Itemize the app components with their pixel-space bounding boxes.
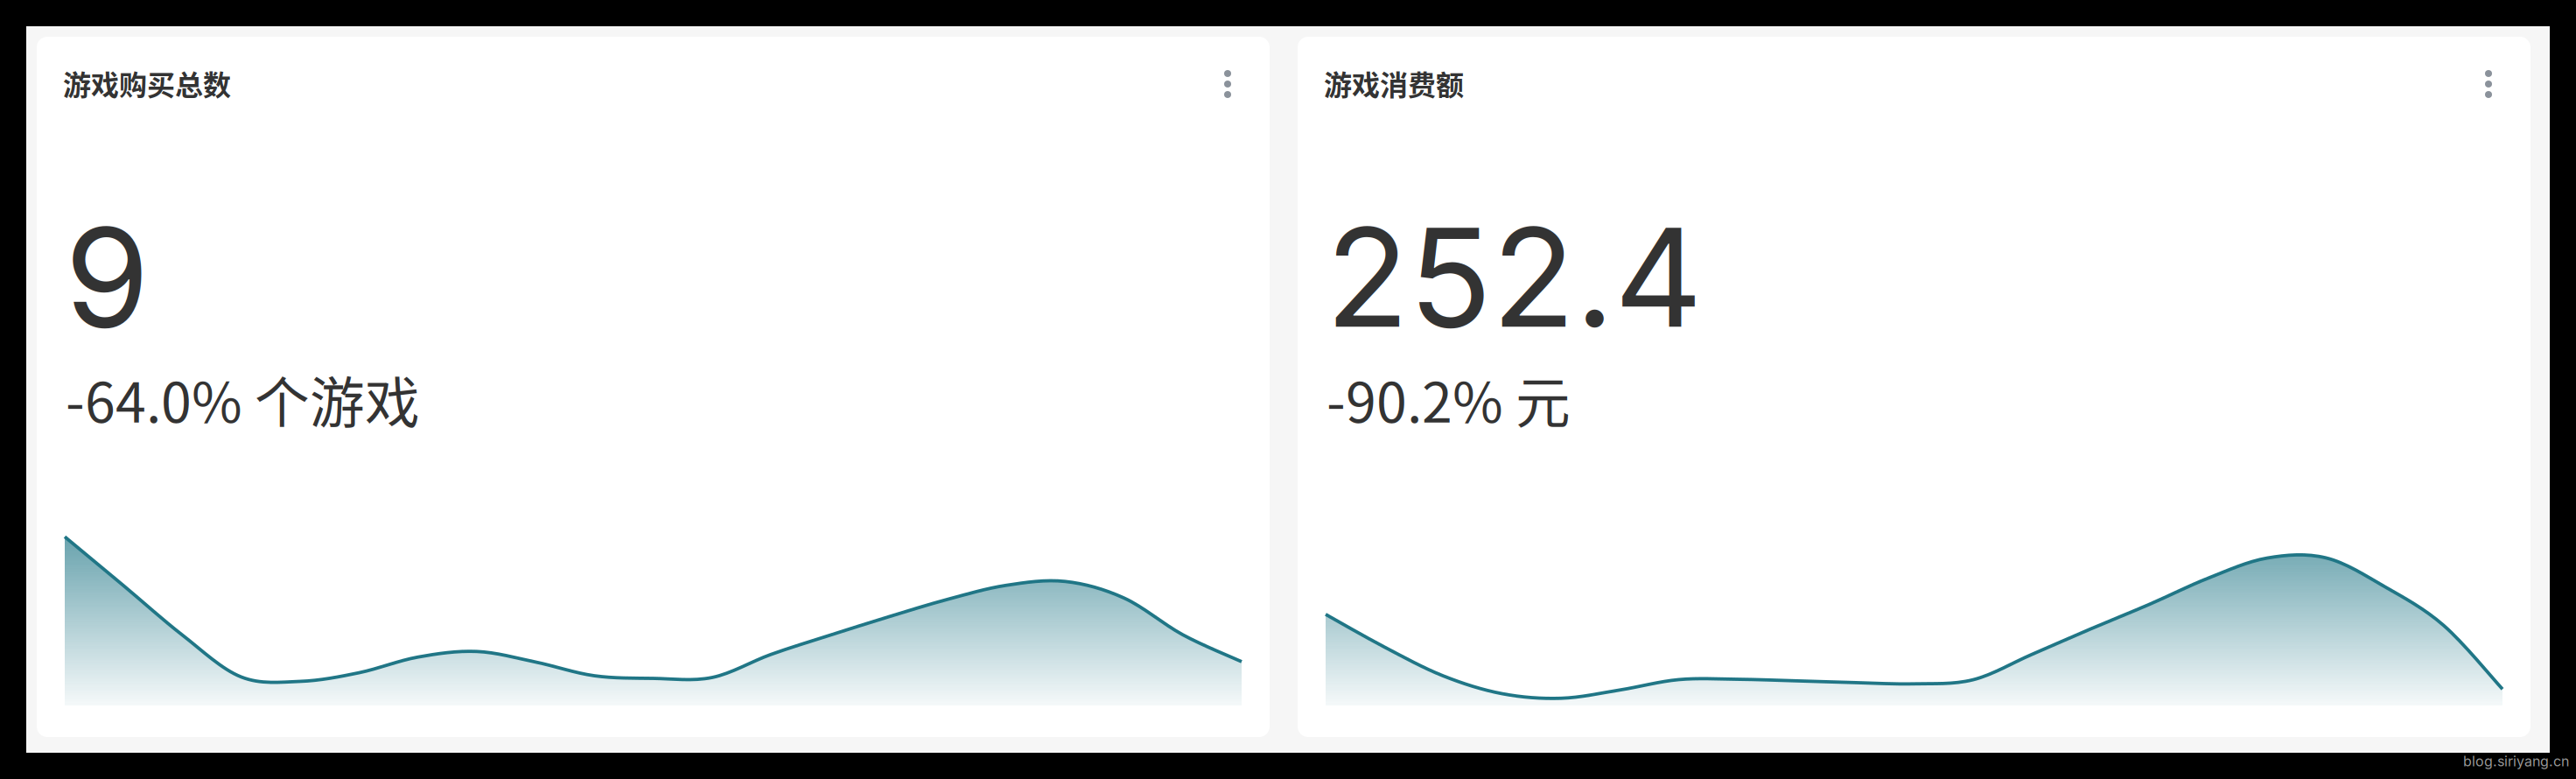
staticText: -64.0% 个游戏: [66, 359, 420, 438]
staticText: blog.siriyang.cn: [2463, 753, 2569, 770]
staticText: 252.4: [1326, 194, 1703, 360]
button[interactable]: 游戏购买总数: [37, 37, 1270, 737]
staticText: 游戏消费额: [1324, 63, 1464, 104]
button[interactable]: 游戏消费额: [1298, 37, 2530, 737]
staticText: 9: [65, 194, 150, 360]
staticText: -90.2% 元: [1326, 359, 1571, 438]
button[interactable]: More options: [1208, 63, 1247, 105]
button[interactable]: More options: [2469, 63, 2508, 105]
staticText: 游戏购买总数: [63, 63, 231, 104]
